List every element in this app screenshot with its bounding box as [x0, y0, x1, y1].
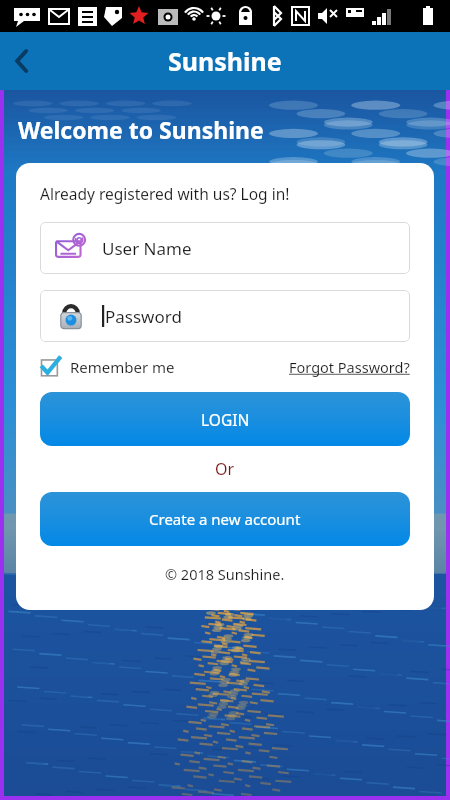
staticText: LOGIN: [201, 409, 250, 430]
staticText: Sunshine: [168, 44, 282, 78]
button[interactable]: Back: [0, 38, 46, 84]
button[interactable]: Forgot Password?: [289, 357, 410, 377]
staticText: Remember me: [70, 357, 175, 377]
button[interactable]: Create a new account: [40, 492, 410, 546]
button[interactable]: LOGIN: [40, 392, 410, 446]
button[interactable]: Remember me: [40, 356, 175, 378]
staticText: Create a new account: [149, 509, 301, 529]
staticText: Or: [215, 458, 235, 480]
staticText: Forgot Password?: [289, 357, 410, 377]
staticText: Already registered with us? Log in!: [40, 183, 290, 204]
staticText: © 2018 Sunshine.: [165, 564, 285, 584]
button[interactable]: Password: [40, 290, 410, 342]
button[interactable]: User Name: [40, 222, 410, 274]
staticText: Welcome to Sunshine: [18, 114, 264, 145]
staticText: Password: [105, 305, 182, 328]
staticText: User Name: [102, 237, 192, 260]
